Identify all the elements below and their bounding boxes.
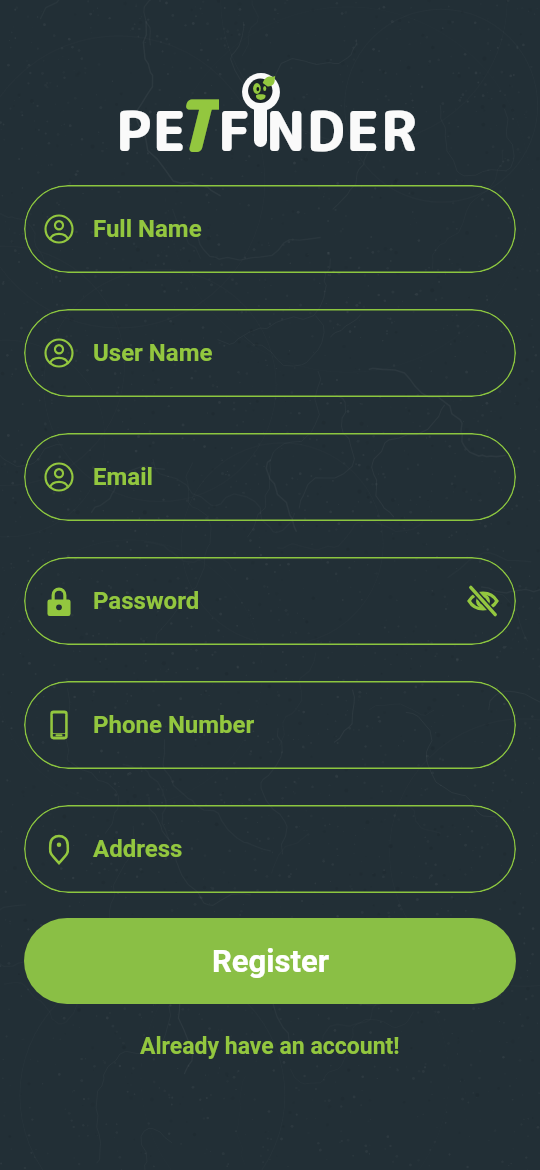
button[interactable]: Already have an account! bbox=[0, 1033, 540, 1060]
staticText: Address bbox=[93, 835, 183, 863]
button[interactable]: Show password bbox=[465, 583, 501, 619]
button[interactable]: Password bbox=[24, 557, 516, 645]
button[interactable]: Phone Number bbox=[24, 681, 516, 769]
staticText: Register bbox=[212, 943, 329, 979]
staticText: NDER bbox=[266, 92, 419, 169]
staticText: Full Name bbox=[93, 215, 202, 243]
staticText: Email bbox=[93, 463, 153, 491]
staticText: Already have an account! bbox=[140, 1033, 400, 1060]
staticText: Phone Number bbox=[93, 711, 255, 739]
button[interactable]: User Name bbox=[24, 309, 516, 397]
staticText: Password bbox=[93, 587, 200, 615]
staticText: PE bbox=[116, 92, 188, 169]
staticText: T bbox=[171, 75, 219, 167]
button[interactable]: Email bbox=[24, 433, 516, 521]
staticText: F bbox=[218, 92, 251, 169]
button[interactable]: Full Name bbox=[24, 185, 516, 273]
button[interactable]: Address bbox=[24, 805, 516, 893]
staticText: User Name bbox=[93, 339, 213, 367]
button[interactable]: Register bbox=[24, 918, 516, 1004]
